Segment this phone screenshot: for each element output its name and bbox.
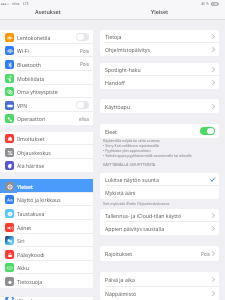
staticText: Näppäimistö — [105, 290, 137, 297]
button[interactable]: Näyttö ja kirkkaus — [0, 193, 93, 206]
button[interactable]: Lentokonetila — [0, 30, 93, 44]
button[interactable]: Spotlight-haku — [100, 63, 219, 76]
button[interactable]: Ohjelmistopäivitys — [100, 43, 219, 56]
button[interactable]: Mykistä ääni — [100, 186, 219, 199]
button[interactable]: Handoff — [100, 76, 219, 89]
button[interactable]: Oma yhteyspiste — [0, 85, 93, 98]
staticText: Asetukset — [35, 8, 61, 15]
staticText: Pois — [80, 61, 89, 67]
staticText: Tietosuoja — [17, 278, 43, 285]
staticText: elisa — [79, 116, 89, 122]
button[interactable]: Siri — [0, 234, 93, 247]
button[interactable]: Mobiilidata — [0, 71, 93, 85]
staticText: iCloud — [17, 297, 33, 300]
button[interactable]: Päällä — [200, 127, 215, 135]
staticText: • Siirry Koti-valikkoon nipistämällä — [103, 143, 159, 148]
button[interactable]: Lukitse näytön suunta — [100, 173, 219, 186]
button[interactable]: Wi-Fi — [0, 44, 93, 57]
staticText: Mykistä ääni — [105, 189, 136, 196]
button[interactable]: Ilmoitukset — [0, 132, 93, 145]
staticText: Taustakuva — [17, 210, 45, 217]
staticText: Käytämällä neljää tai viittä sormea: — [103, 138, 161, 143]
button[interactable]: Äänet — [0, 220, 93, 234]
button[interactable]: Tietoja — [100, 30, 219, 43]
button[interactable]: Älä häiritse — [0, 159, 93, 172]
staticText: Pääsykoodi — [17, 251, 45, 258]
staticText: Lukitse näytön suunta — [105, 176, 159, 183]
button[interactable]: Ohjauskeskus — [0, 145, 93, 159]
staticText: Siri — [17, 237, 25, 244]
button[interactable]: Rajoitukset — [100, 246, 219, 261]
staticText: Bluetooth — [17, 61, 42, 68]
staticText: Yleiset — [17, 183, 33, 190]
staticText: Yleiset — [151, 8, 169, 15]
staticText: Handoff — [105, 79, 125, 86]
staticText: LTE — [23, 1, 29, 6]
staticText: • Vaihda appia pyyhkäisemällä vasemmalle… — [103, 153, 192, 158]
button[interactable]: iCloud — [0, 297, 93, 300]
staticText: Oma yhteyspiste — [17, 88, 58, 95]
staticText: Ilmoitukset — [17, 135, 45, 142]
staticText: Käyttöapu — [105, 103, 130, 110]
staticText: Lentokonetila — [17, 34, 51, 41]
staticText: Voit mykistää iPadin Ohjauskeskuksessa. — [103, 201, 170, 206]
button[interactable]: Päivä ja aika — [100, 272, 219, 287]
button[interactable]: Akku — [0, 261, 93, 274]
button[interactable]: Taustakuva — [0, 206, 93, 220]
staticText: Ohjelmistopäivitys — [105, 46, 150, 53]
staticText: Wi-Fi — [17, 47, 29, 54]
staticText: 46 % — [201, 1, 210, 6]
staticText: Pois — [201, 251, 210, 257]
button[interactable]: Operaattori — [0, 112, 93, 125]
button[interactable]: Pois — [76, 101, 89, 109]
staticText: Äänet — [17, 224, 32, 231]
staticText: • Pyyhkäise ylös appinvalitsin — [103, 148, 151, 153]
button[interactable]: Käyttöapu — [100, 99, 219, 113]
staticText: Älä häiritse — [17, 162, 45, 169]
staticText: Akku — [17, 264, 30, 271]
staticText: Eleet — [105, 128, 117, 135]
staticText: Päivä ja aika — [105, 276, 135, 283]
button[interactable]: Bluetooth — [0, 57, 93, 71]
button[interactable]: Tietosuoja — [0, 274, 93, 288]
staticText: Tietoja — [105, 33, 122, 40]
staticText: Tallennus- ja iCloud-tilan käyttö — [105, 212, 182, 219]
staticText: Pois — [80, 48, 89, 54]
staticText: KÄYTTÄMÄLLÄ SIVUKYTKINTÄ — [103, 162, 156, 167]
button[interactable]: VPN — [0, 98, 93, 112]
staticText: elisa — [12, 1, 20, 6]
button[interactable]: Näppäimistö — [100, 287, 219, 300]
staticText: VPN — [17, 102, 28, 109]
staticText: Mobiilidata — [17, 75, 45, 82]
staticText: Spotlight-haku — [105, 66, 141, 73]
button[interactable]: Tallennus- ja iCloud-tilan käyttö — [100, 209, 219, 222]
staticText: Rajoitukset — [105, 250, 133, 257]
button[interactable]: Pääsykoodi — [0, 247, 93, 261]
button[interactable]: Eleet — [100, 124, 219, 138]
button[interactable]: Pois — [76, 33, 89, 41]
staticText: Operaattori — [17, 115, 46, 122]
button[interactable]: Appien päivitys taustalla — [100, 222, 219, 235]
button[interactable]: Yleiset — [0, 179, 93, 193]
staticText: Ohjauskeskus — [17, 149, 51, 156]
staticText: Näyttö ja kirkkaus — [17, 196, 61, 203]
staticText: Appien päivitys taustalla — [105, 225, 165, 232]
